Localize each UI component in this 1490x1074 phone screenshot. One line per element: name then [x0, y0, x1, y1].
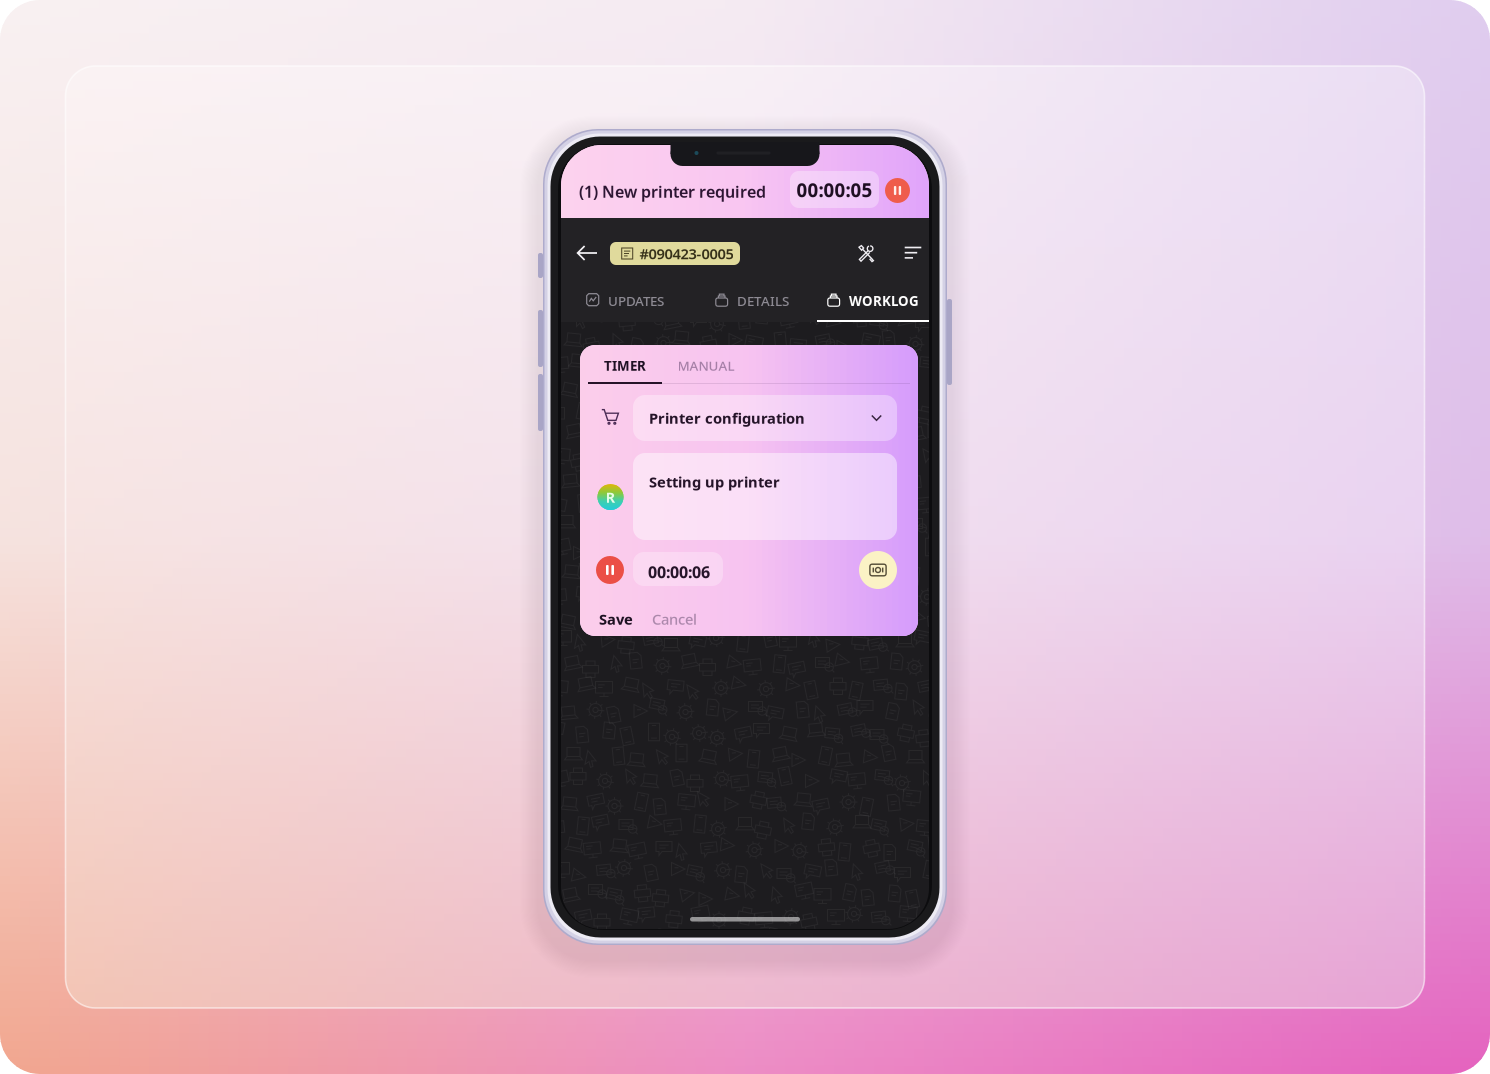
button[interactable]: TIMER	[588, 349, 662, 382]
button[interactable]: MANUAL	[676, 349, 736, 382]
staticText: MANUAL	[677, 357, 734, 374]
button[interactable]: Save	[599, 607, 645, 631]
staticText: #090423-0005	[639, 244, 733, 263]
staticText: (1) New printer required	[579, 181, 766, 202]
button[interactable]: UPDATES	[578, 278, 674, 322]
button[interactable]: Take photo	[859, 551, 897, 589]
button[interactable]: Pause timer	[885, 178, 910, 203]
staticText: WORKLOG	[849, 292, 919, 310]
staticText: Save	[599, 609, 633, 629]
staticText: Printer configuration	[649, 408, 805, 428]
staticText: 00:00:05	[796, 178, 872, 202]
button[interactable]: DETAILS	[707, 278, 803, 322]
staticText: UPDATES	[608, 292, 664, 310]
button[interactable]: Tools	[857, 244, 876, 263]
staticText: Setting up printer	[649, 472, 780, 491]
button[interactable]: Pause	[596, 556, 624, 584]
button[interactable]: WORKLOG	[819, 278, 929, 322]
button[interactable]: Back	[575, 242, 599, 264]
staticText: 00:00:06	[648, 561, 710, 583]
button[interactable]: Cancel	[652, 607, 714, 631]
staticText: Cancel	[652, 609, 697, 629]
staticText: TIMER	[604, 357, 646, 374]
staticText: DETAILS	[737, 292, 789, 310]
staticText: R	[605, 487, 615, 507]
button[interactable]: Printer configuration	[633, 395, 897, 441]
button[interactable]: Filter	[904, 246, 922, 259]
button[interactable]: #090423-0005	[610, 242, 740, 265]
